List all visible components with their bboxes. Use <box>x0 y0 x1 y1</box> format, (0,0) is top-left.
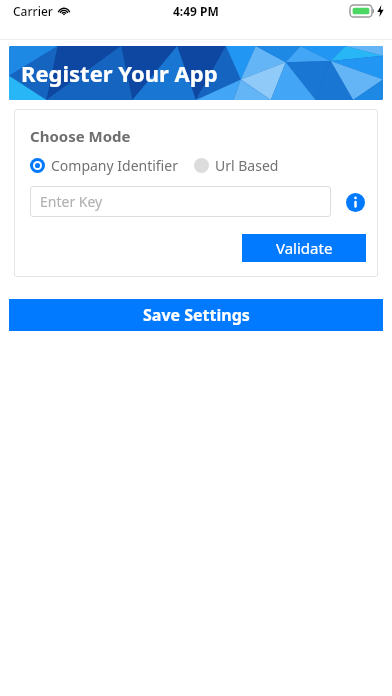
staticText: Register Your App <box>21 58 218 88</box>
staticText: Carrier <box>13 3 53 19</box>
button[interactable]: Information <box>344 191 366 213</box>
button[interactable]: Validate <box>242 234 366 262</box>
staticText: Validate <box>276 238 333 258</box>
button[interactable]: Company Identifier <box>30 156 178 175</box>
button[interactable]: Url Based <box>194 156 279 175</box>
staticText: 4:49 PM <box>173 3 219 19</box>
staticText: Url Based <box>215 156 279 175</box>
button[interactable]: Enter Key <box>30 186 331 217</box>
staticText: Enter Key <box>40 192 103 211</box>
button[interactable]: Save Settings <box>9 299 383 331</box>
staticText: Save Settings <box>143 304 250 326</box>
staticText: Company Identifier <box>51 156 178 175</box>
staticText: Choose Mode <box>30 126 131 146</box>
